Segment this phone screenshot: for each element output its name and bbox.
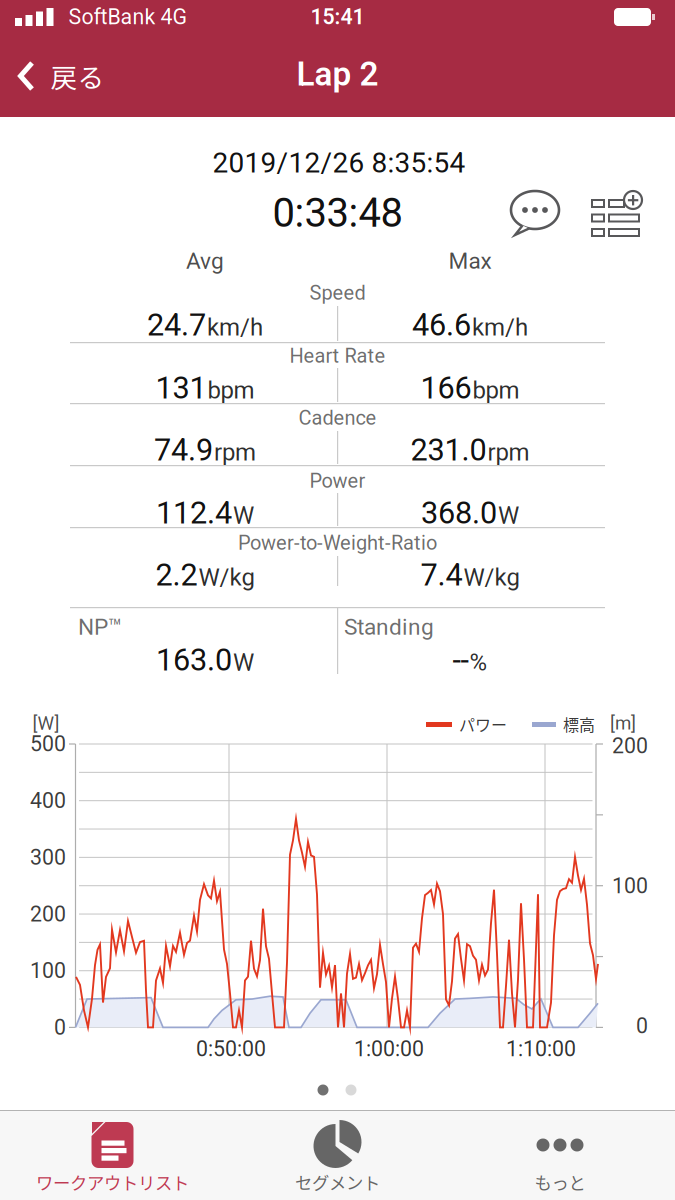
staticText: km/h: [472, 314, 528, 341]
staticText: 0:50:00: [196, 1037, 266, 1061]
staticText: Power: [309, 470, 365, 492]
staticText: 112.4: [156, 495, 232, 530]
staticText: Heart Rate: [289, 345, 385, 367]
staticText: 200: [30, 902, 66, 926]
button[interactable]: Comments: [507, 188, 563, 238]
staticText: %: [469, 649, 487, 676]
staticText: 300: [30, 845, 66, 870]
staticText: 0:33:48: [272, 190, 402, 236]
staticText: Power-to-Weight-Ratio: [238, 532, 437, 554]
staticText: 100: [30, 959, 66, 983]
button[interactable]: セグメント: [225, 1111, 450, 1200]
staticText: 166: [420, 370, 471, 405]
staticText: [m]: [610, 712, 636, 734]
staticText: 100: [612, 874, 648, 898]
staticText: km/h: [207, 314, 263, 341]
staticText: Lap 2: [296, 55, 378, 93]
staticText: 標高: [563, 712, 595, 736]
staticText: bpm: [207, 377, 254, 404]
staticText: 2.2: [155, 557, 197, 592]
staticText: bpm: [472, 377, 519, 404]
staticText: rpm: [214, 439, 256, 466]
staticText: W: [233, 649, 254, 676]
staticText: 500: [30, 732, 66, 756]
staticText: 400: [30, 788, 66, 813]
staticText: Max: [448, 248, 491, 274]
staticText: Speed: [309, 282, 365, 304]
staticText: 131: [155, 370, 206, 405]
staticText: Avg: [186, 248, 224, 274]
staticText: Standing: [344, 614, 434, 640]
button[interactable]: Back: [17, 57, 104, 95]
staticText: 163.0: [156, 642, 232, 677]
staticText: rpm: [487, 439, 529, 466]
staticText: SoftBank 4G: [68, 5, 187, 29]
staticText: パワー: [459, 712, 507, 736]
staticText: 368.0: [421, 495, 497, 530]
staticText: --: [452, 642, 468, 677]
staticText: 戻る: [50, 57, 104, 95]
staticText: 7.4: [420, 557, 462, 592]
staticText: セグメント: [295, 1169, 380, 1195]
staticText: W: [498, 502, 519, 529]
staticText: 15:41: [310, 5, 364, 29]
staticText: Cadence: [298, 407, 376, 429]
staticText: [W]: [32, 712, 59, 734]
button[interactable]: Add to list: [590, 191, 644, 239]
button[interactable]: ワークアウトリスト: [0, 1111, 225, 1200]
staticText: 24.7: [147, 307, 206, 342]
staticText: 0: [54, 1015, 66, 1040]
staticText: 231.0: [410, 432, 486, 467]
button[interactable]: もっと: [447, 1111, 672, 1200]
staticText: 0: [636, 1014, 648, 1038]
staticText: W/kg: [198, 564, 254, 591]
staticText: W: [233, 502, 254, 529]
staticText: 2019/12/26 8:35:54: [212, 147, 465, 179]
staticText: 200: [612, 734, 648, 758]
staticText: W/kg: [463, 564, 519, 591]
staticText: NP™: [78, 614, 122, 640]
staticText: 1:10:00: [506, 1037, 576, 1061]
staticText: もっと: [534, 1169, 585, 1195]
staticText: 46.6: [412, 307, 471, 342]
staticText: 74.9: [154, 432, 213, 467]
staticText: 1:00:00: [354, 1037, 424, 1061]
staticText: ワークアウトリスト: [36, 1169, 189, 1195]
